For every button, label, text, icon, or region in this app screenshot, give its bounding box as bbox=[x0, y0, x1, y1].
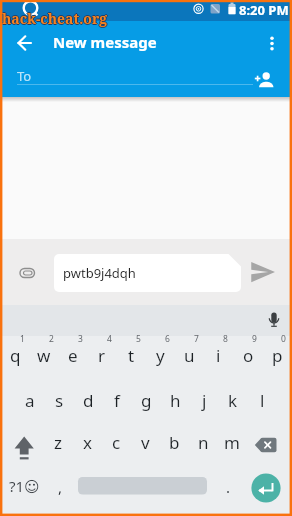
staticText: i bbox=[216, 344, 221, 367]
staticText: 9 bbox=[252, 333, 257, 345]
staticText: 2 bbox=[49, 333, 54, 345]
staticText: . bbox=[226, 477, 231, 497]
staticText: hack-cheat.org bbox=[1, 9, 107, 28]
staticText: , bbox=[58, 477, 63, 497]
staticText: f bbox=[114, 389, 120, 412]
staticText: 5 bbox=[136, 333, 141, 345]
staticText: 1 bbox=[20, 333, 25, 345]
staticText: v bbox=[141, 431, 150, 454]
staticText: h bbox=[170, 389, 181, 412]
staticText: c bbox=[112, 431, 121, 454]
staticText: y bbox=[156, 344, 165, 367]
staticText: hack-cheat.org bbox=[2, 9, 108, 28]
staticText: pwtb9j4dqh bbox=[63, 264, 136, 282]
staticText: j bbox=[202, 389, 207, 412]
staticText: 7 bbox=[194, 333, 199, 345]
staticText: k bbox=[228, 389, 238, 412]
staticText: e bbox=[68, 344, 78, 367]
staticText: q bbox=[10, 344, 21, 367]
staticText: 8 bbox=[223, 333, 228, 345]
staticText: s bbox=[55, 389, 64, 412]
staticText: d bbox=[83, 389, 94, 412]
staticText: To bbox=[17, 67, 32, 85]
staticText: g bbox=[141, 389, 152, 412]
staticText: n bbox=[198, 431, 209, 454]
staticText: 8:20 PM bbox=[239, 1, 289, 19]
staticText: b bbox=[169, 431, 180, 454]
staticText: m bbox=[224, 431, 240, 454]
staticText: hack-cheat.org bbox=[2, 8, 108, 27]
staticText: ?1☺ bbox=[9, 476, 40, 496]
staticText: 4 bbox=[107, 333, 112, 345]
staticText: r bbox=[98, 344, 106, 367]
staticText: 6 bbox=[165, 333, 170, 345]
staticText: z bbox=[54, 431, 62, 454]
staticText: o bbox=[243, 344, 254, 367]
staticText: New message bbox=[53, 32, 157, 52]
staticText: u bbox=[184, 344, 195, 367]
staticText: l bbox=[260, 389, 265, 412]
staticText: t bbox=[128, 344, 135, 367]
staticText: 0 bbox=[281, 333, 286, 345]
staticText: a bbox=[25, 389, 35, 412]
staticText: x bbox=[83, 431, 92, 454]
staticText: p bbox=[272, 344, 283, 367]
staticText: 3 bbox=[78, 333, 83, 345]
staticText: w bbox=[37, 344, 51, 367]
staticText: hack-cheat.org bbox=[2, 10, 108, 29]
staticText: hack-cheat.org bbox=[3, 9, 109, 28]
